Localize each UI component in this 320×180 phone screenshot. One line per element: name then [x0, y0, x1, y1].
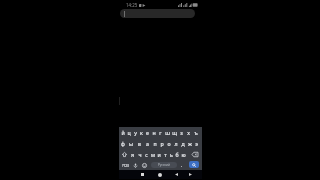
- button[interactable]: в: [135, 138, 143, 149]
- staticText: в: [138, 140, 141, 147]
- button[interactable]: д: [179, 138, 186, 149]
- button[interactable]: м: [150, 149, 156, 160]
- staticText: р: [160, 140, 164, 147]
- staticText: х: [187, 129, 190, 136]
- staticText: и: [157, 151, 161, 158]
- staticText: л: [174, 140, 178, 147]
- button[interactable]: т: [162, 149, 168, 160]
- button[interactable]: ж: [186, 138, 193, 149]
- button[interactable]: ц: [126, 127, 132, 138]
- staticText: я: [131, 151, 134, 158]
- button[interactable]: Hide keyboard: [185, 170, 195, 179]
- staticText: к: [140, 129, 143, 136]
- staticText: ж: [188, 140, 192, 147]
- button[interactable]: е: [144, 127, 150, 138]
- button[interactable]: и: [156, 149, 162, 160]
- button[interactable]: Back: [171, 170, 181, 179]
- staticText: ъ: [194, 129, 198, 136]
- staticText: т: [164, 151, 167, 158]
- button[interactable]: [120, 9, 195, 18]
- button[interactable]: б: [174, 149, 180, 160]
- button[interactable]: Backspace: [189, 149, 200, 160]
- button[interactable]: з: [178, 127, 185, 138]
- button[interactable]: х: [185, 127, 192, 138]
- button[interactable]: о: [165, 138, 172, 149]
- button[interactable]: а: [143, 138, 151, 149]
- button[interactable]: Voice input: [131, 160, 140, 171]
- staticText: 14:25: [126, 2, 138, 8]
- staticText: щ: [172, 129, 177, 136]
- staticText: е: [146, 129, 149, 136]
- button[interactable]: й: [120, 127, 126, 138]
- button[interactable]: н: [150, 127, 157, 138]
- button[interactable]: ч: [136, 149, 143, 160]
- staticText: ь: [170, 151, 173, 158]
- staticText: ш: [165, 129, 170, 136]
- staticText: ч: [138, 151, 142, 158]
- staticText: п: [153, 140, 157, 147]
- staticText: ц: [127, 129, 131, 136]
- staticText: ю: [181, 151, 186, 158]
- button[interactable]: ф: [119, 138, 127, 149]
- button[interactable]: ?123: [120, 160, 131, 171]
- staticText: ф: [121, 140, 125, 147]
- button[interactable]: ь: [168, 149, 174, 160]
- staticText: з: [180, 129, 183, 136]
- button[interactable]: Recents: [137, 170, 147, 179]
- button[interactable]: Search: [189, 161, 199, 168]
- button[interactable]: Emoji: [139, 160, 149, 171]
- button[interactable]: Shift: [120, 149, 129, 160]
- staticText: с: [145, 151, 148, 158]
- button[interactable]: г: [157, 127, 164, 138]
- staticText: д: [181, 140, 185, 147]
- button[interactable]: п: [151, 138, 158, 149]
- button[interactable]: с: [143, 149, 150, 160]
- staticText: г: [159, 129, 162, 136]
- staticText: у: [134, 129, 137, 136]
- staticText: а: [146, 140, 149, 147]
- staticText: й: [121, 129, 125, 136]
- staticText: ы: [129, 140, 133, 147]
- button[interactable]: я: [129, 149, 136, 160]
- button[interactable]: л: [172, 138, 179, 149]
- button[interactable]: э: [193, 138, 200, 149]
- staticText: .: [181, 162, 183, 169]
- button[interactable]: ъ: [192, 127, 199, 138]
- staticText: б: [175, 151, 179, 158]
- button[interactable]: Home: [155, 170, 165, 179]
- button[interactable]: .: [178, 160, 186, 171]
- button[interactable]: к: [138, 127, 144, 138]
- button[interactable]: ш: [164, 127, 171, 138]
- staticText: м: [151, 151, 155, 158]
- staticText: н: [152, 129, 156, 136]
- staticText: э: [195, 140, 198, 147]
- button[interactable]: ю: [180, 149, 186, 160]
- button[interactable]: у: [132, 127, 138, 138]
- staticText: о: [167, 140, 171, 147]
- button[interactable]: щ: [171, 127, 178, 138]
- staticText: ?123: [122, 164, 129, 168]
- staticText: Русский: [158, 163, 170, 167]
- button[interactable]: ы: [127, 138, 135, 149]
- button[interactable]: Русский: [151, 162, 177, 168]
- button[interactable]: р: [158, 138, 165, 149]
